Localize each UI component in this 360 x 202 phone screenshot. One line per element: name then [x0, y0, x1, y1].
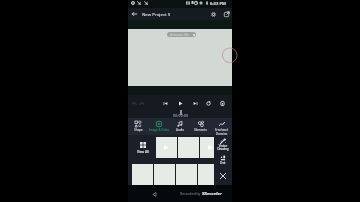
button[interactable]: Undo [130, 99, 139, 108]
button[interactable]: Elements [190, 118, 211, 135]
button[interactable]: Shape [128, 118, 148, 135]
button[interactable]: Capture [218, 99, 227, 108]
staticText: Freehand Drawing [215, 128, 228, 135]
button[interactable]: Skip to end [191, 99, 200, 108]
button[interactable] [156, 137, 177, 158]
staticText: Elements [194, 128, 207, 132]
staticText: XRecorder [202, 191, 222, 196]
button[interactable]: Redo [137, 99, 146, 108]
button[interactable]: Image & Video [148, 118, 169, 135]
button[interactable] [200, 137, 221, 158]
staticText: 6:33 PM [210, 1, 226, 7]
button[interactable]: Back [129, 8, 140, 20]
staticText: Audio [176, 128, 184, 132]
button[interactable]: Back [149, 189, 159, 199]
button[interactable]: Text [214, 155, 232, 165]
staticText: Shape [134, 128, 143, 132]
button[interactable]: Close [214, 171, 232, 181]
button[interactable]: Freehand Drawing [211, 118, 232, 135]
button[interactable]: Loop [204, 99, 213, 108]
staticText: Text [220, 161, 226, 165]
button[interactable]: Export [221, 8, 232, 20]
staticText: Animate Me [170, 32, 190, 37]
button[interactable]: Audio [169, 118, 190, 135]
button[interactable]: Settings [208, 8, 219, 20]
staticText: Recorded by [180, 191, 202, 196]
staticText: New Project 9 [142, 11, 171, 17]
staticText: Vector Drawing [217, 144, 229, 151]
button[interactable]: Animate Me [167, 32, 196, 37]
button[interactable] [198, 164, 219, 185]
staticText: View All [137, 149, 149, 153]
staticText: Image & Video [149, 128, 169, 132]
button[interactable]: Vector Drawing [214, 138, 232, 151]
button[interactable]: View All [133, 142, 153, 153]
button[interactable]: Skip to start [161, 99, 170, 108]
button[interactable]: Play [176, 99, 185, 108]
staticText: 00:00:00 [173, 114, 189, 118]
